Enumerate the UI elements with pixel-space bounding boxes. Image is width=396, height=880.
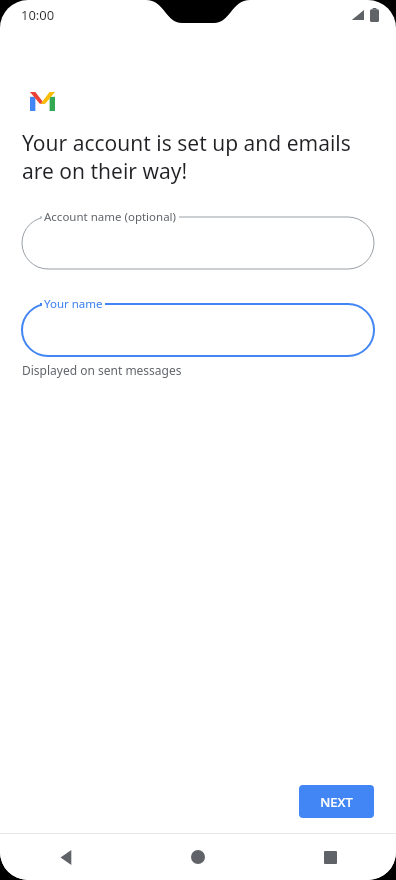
staticText: 10:00 <box>21 6 55 24</box>
staticText: NEXT <box>320 793 353 811</box>
button[interactable]: Account name (optional) <box>22 209 374 269</box>
staticText: Displayed on sent messages <box>22 362 182 378</box>
staticText: Your account is set up and emails are on… <box>22 129 372 185</box>
button[interactable]: Your name <box>22 296 374 356</box>
staticText: Your name <box>44 296 103 312</box>
button[interactable]: Recent apps <box>264 834 396 880</box>
button[interactable]: Home <box>132 834 264 880</box>
button[interactable]: Back <box>0 834 132 880</box>
button[interactable]: NEXT <box>299 785 374 818</box>
staticText: Account name (optional) <box>44 209 177 225</box>
